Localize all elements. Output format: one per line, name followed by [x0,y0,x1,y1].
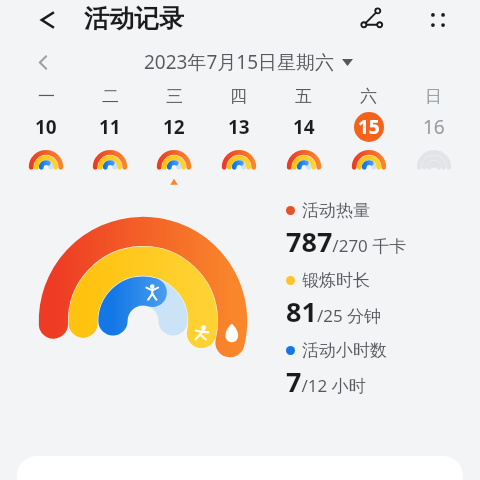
staticText: 16 [423,114,445,140]
staticText: 二 [102,86,119,107]
button[interactable]: Share [352,0,392,40]
staticText: 787/270 千卡 [286,223,407,260]
staticText: 活动热量 [302,200,370,221]
button[interactable]: 四 [206,84,271,186]
button[interactable]: 六 [336,84,401,186]
button[interactable]: 日 [401,84,466,186]
staticText: 三 [166,86,183,107]
staticText: 锻炼时长 [302,270,370,291]
staticText: 13 [228,114,250,140]
button[interactable]: More options [418,0,458,40]
staticText: 活动记录 [84,3,184,34]
button[interactable]: 2023年7月15日星期六 [138,47,359,77]
staticText: 日 [425,86,442,107]
button[interactable]: 二 [78,84,142,186]
staticText: 81/25 分钟 [286,293,382,330]
staticText: 一 [38,86,55,107]
button[interactable]: 一 [14,84,78,186]
button[interactable]: 三 [142,84,206,186]
button[interactable]: Back [30,2,66,38]
staticText: 2023年7月15日星期六 [144,49,335,75]
staticText: 活动小时数 [302,340,387,361]
staticText: 14 [293,114,315,140]
staticText: 10 [35,114,57,140]
button[interactable]: 锻炼时长 [286,270,480,330]
staticText: 11 [99,114,121,140]
staticText: 15 [358,114,380,140]
staticText: 12 [163,114,185,140]
button[interactable]: 活动热量 [286,200,480,260]
staticText: 六 [360,86,377,107]
button[interactable]: 活动小时数 [286,340,480,400]
staticText: 7/12 小时 [286,363,366,400]
staticText: 四 [230,86,247,107]
staticText: 五 [295,86,312,107]
button[interactable]: Previous day [26,45,60,79]
button[interactable]: 五 [271,84,336,186]
